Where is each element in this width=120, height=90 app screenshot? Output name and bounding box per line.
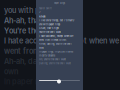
staticText: Ah-ah, that's right bbox=[39, 27, 59, 30]
staticText: I hate accidents, except when we bbox=[39, 35, 73, 37]
staticText: ♪ bbox=[39, 10, 41, 14]
staticText: Paper Rings bbox=[54, 2, 65, 5]
button[interactable]: Playback position bbox=[39, 78, 80, 83]
staticText: want bbox=[39, 46, 44, 49]
staticText: own bbox=[4, 67, 18, 76]
staticText: Oh, you're the one I want bbox=[39, 58, 66, 61]
staticText: Ah-ah bbox=[39, 15, 45, 18]
staticText: went from friends to this bbox=[39, 38, 66, 41]
staticText: You're the one I want bbox=[39, 31, 61, 34]
staticText: You're the one bbox=[4, 26, 53, 35]
staticText: Taylor Swift bbox=[39, 7, 52, 10]
staticText: you with paper bbox=[4, 6, 56, 15]
staticText: I like shiny things, but I'd marry bbox=[39, 19, 74, 22]
staticText: in dirty dreams bbox=[39, 54, 55, 57]
staticText: I hate accidents, except when we bbox=[4, 36, 119, 45]
staticText: In paper rings, in picture frames bbox=[39, 50, 73, 53]
staticText: In paper rings, in bbox=[4, 77, 63, 86]
staticText: Darling, you're the one I want bbox=[39, 62, 71, 65]
staticText: Ah-ah, darling, you're bbox=[4, 57, 78, 66]
staticText: Ah-ah, darling, you're the one I bbox=[39, 42, 72, 45]
staticText: you with paper rings bbox=[39, 23, 60, 26]
staticText: Ah-ah, that's bbox=[4, 16, 48, 25]
staticText: went from friends bbox=[4, 47, 67, 56]
